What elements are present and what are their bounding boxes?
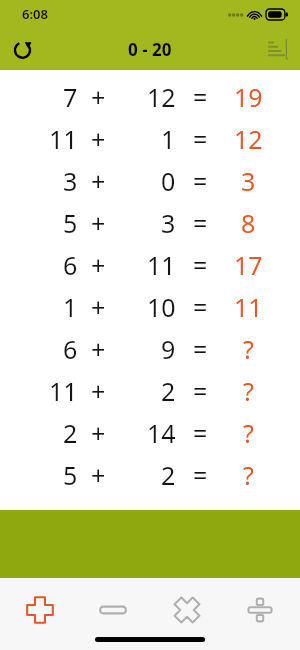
- staticText: 2: [161, 458, 176, 492]
- staticText: 12: [234, 122, 263, 156]
- staticText: +: [91, 374, 106, 408]
- staticText: 2: [63, 416, 78, 450]
- staticText: =: [193, 164, 208, 198]
- staticText: 11: [234, 290, 263, 324]
- staticText: 3: [161, 206, 176, 240]
- button[interactable]: 6: [0, 328, 300, 370]
- staticText: 6: [63, 248, 78, 282]
- staticText: 3: [63, 164, 78, 198]
- button[interactable]: 3: [0, 160, 300, 202]
- staticText: 7: [63, 80, 78, 114]
- staticText: +: [91, 122, 106, 156]
- button[interactable]: 5: [0, 202, 300, 244]
- staticText: +: [91, 416, 106, 450]
- staticText: +: [91, 290, 106, 324]
- staticText: ?: [243, 332, 254, 366]
- staticText: 19: [234, 80, 263, 114]
- staticText: 17: [234, 248, 263, 282]
- button[interactable]: Subtraction: [80, 584, 146, 636]
- staticText: ?: [243, 458, 254, 492]
- button[interactable]: 5: [0, 454, 300, 496]
- staticText: ?: [243, 374, 254, 408]
- staticText: +: [91, 458, 106, 492]
- staticText: +: [91, 332, 106, 366]
- button[interactable]: Division: [227, 584, 293, 636]
- staticText: +: [91, 206, 106, 240]
- staticText: 0: [161, 164, 176, 198]
- staticText: =: [193, 416, 208, 450]
- staticText: 10: [147, 290, 176, 324]
- button[interactable]: 7: [0, 76, 300, 118]
- staticText: 11: [49, 374, 78, 408]
- staticText: =: [193, 290, 208, 324]
- staticText: =: [193, 248, 208, 282]
- button[interactable]: Statistics: [256, 28, 300, 70]
- staticText: 6:08: [22, 5, 48, 23]
- staticText: 5: [63, 458, 78, 492]
- staticText: 5: [63, 206, 78, 240]
- staticText: =: [193, 122, 208, 156]
- staticText: 6: [63, 332, 78, 366]
- staticText: =: [193, 374, 208, 408]
- staticText: ?: [243, 416, 254, 450]
- staticText: 2: [161, 374, 176, 408]
- button[interactable]: 11: [0, 118, 300, 160]
- button[interactable]: 11: [0, 370, 300, 412]
- staticText: 8: [241, 206, 256, 240]
- staticText: =: [193, 458, 208, 492]
- staticText: 0 - 20: [128, 38, 172, 61]
- staticText: =: [193, 206, 208, 240]
- button[interactable]: Refresh: [0, 28, 44, 70]
- staticText: =: [193, 80, 208, 114]
- staticText: 11: [49, 122, 78, 156]
- button[interactable]: Multiplication: [154, 584, 220, 636]
- staticText: 1: [63, 290, 78, 324]
- staticText: 9: [161, 332, 176, 366]
- staticText: 1: [161, 122, 176, 156]
- staticText: 3: [241, 164, 256, 198]
- staticText: 11: [147, 248, 176, 282]
- button[interactable]: 1: [0, 286, 300, 328]
- button[interactable]: 2: [0, 412, 300, 454]
- staticText: +: [91, 248, 106, 282]
- button[interactable]: Addition: [7, 584, 73, 636]
- staticText: 12: [147, 80, 176, 114]
- staticText: =: [193, 332, 208, 366]
- staticText: +: [91, 164, 106, 198]
- staticText: +: [91, 80, 106, 114]
- staticText: 14: [147, 416, 176, 450]
- button[interactable]: 6: [0, 244, 300, 286]
